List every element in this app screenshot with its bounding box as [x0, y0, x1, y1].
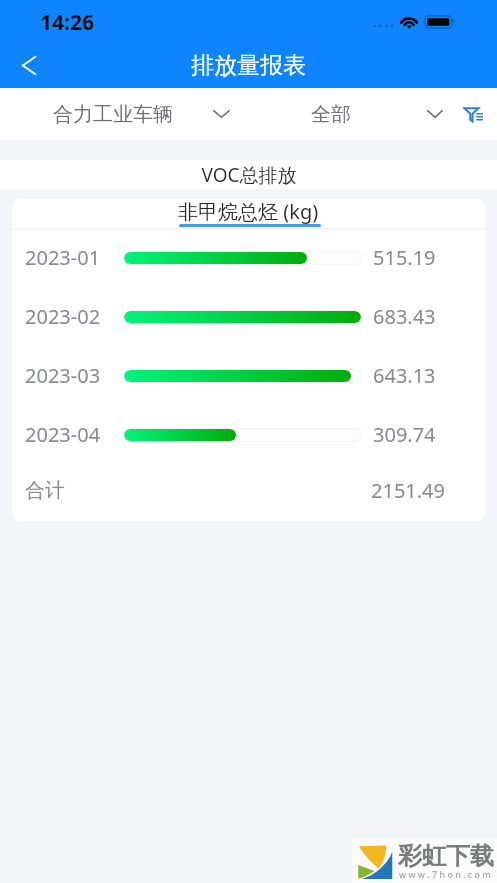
staticText: 合计 — [25, 478, 65, 503]
button[interactable]: 合力工业车辆 — [0, 88, 240, 140]
staticText: 彩虹下载 — [398, 841, 494, 871]
staticText: 683.43 — [373, 303, 436, 330]
staticText: 515.19 — [373, 244, 436, 271]
staticText: 643.13 — [373, 362, 436, 389]
staticText: 2023-02 — [25, 303, 101, 330]
button[interactable]: 非甲烷总烃 (kg) — [12, 199, 485, 228]
staticText: 非甲烷总烃 (kg) — [178, 199, 319, 225]
staticText: 309.74 — [373, 421, 436, 448]
button[interactable]: 全部 — [240, 88, 443, 140]
button[interactable]: Filter — [443, 88, 497, 140]
button[interactable]: Back — [0, 42, 58, 88]
staticText: 2023-01 — [25, 244, 101, 271]
button[interactable]: 2023-03 — [12, 346, 485, 405]
staticText: VOC总排放 — [201, 162, 297, 188]
staticText: 全部 — [311, 102, 351, 127]
staticText: w w w . 7 h o n . c o m — [399, 868, 491, 880]
button[interactable]: 2023-02 — [12, 287, 485, 346]
button[interactable]: 2023-04 — [12, 405, 485, 464]
staticText: 合力工业车辆 — [53, 102, 173, 127]
staticText: 2151.49 — [371, 477, 445, 504]
staticText: 2023-03 — [25, 362, 101, 389]
staticText: 排放量报表 — [191, 51, 306, 80]
staticText: 2023-04 — [25, 421, 101, 448]
staticText: 14:26 — [40, 8, 94, 37]
button[interactable]: 2023-01 — [12, 228, 485, 287]
